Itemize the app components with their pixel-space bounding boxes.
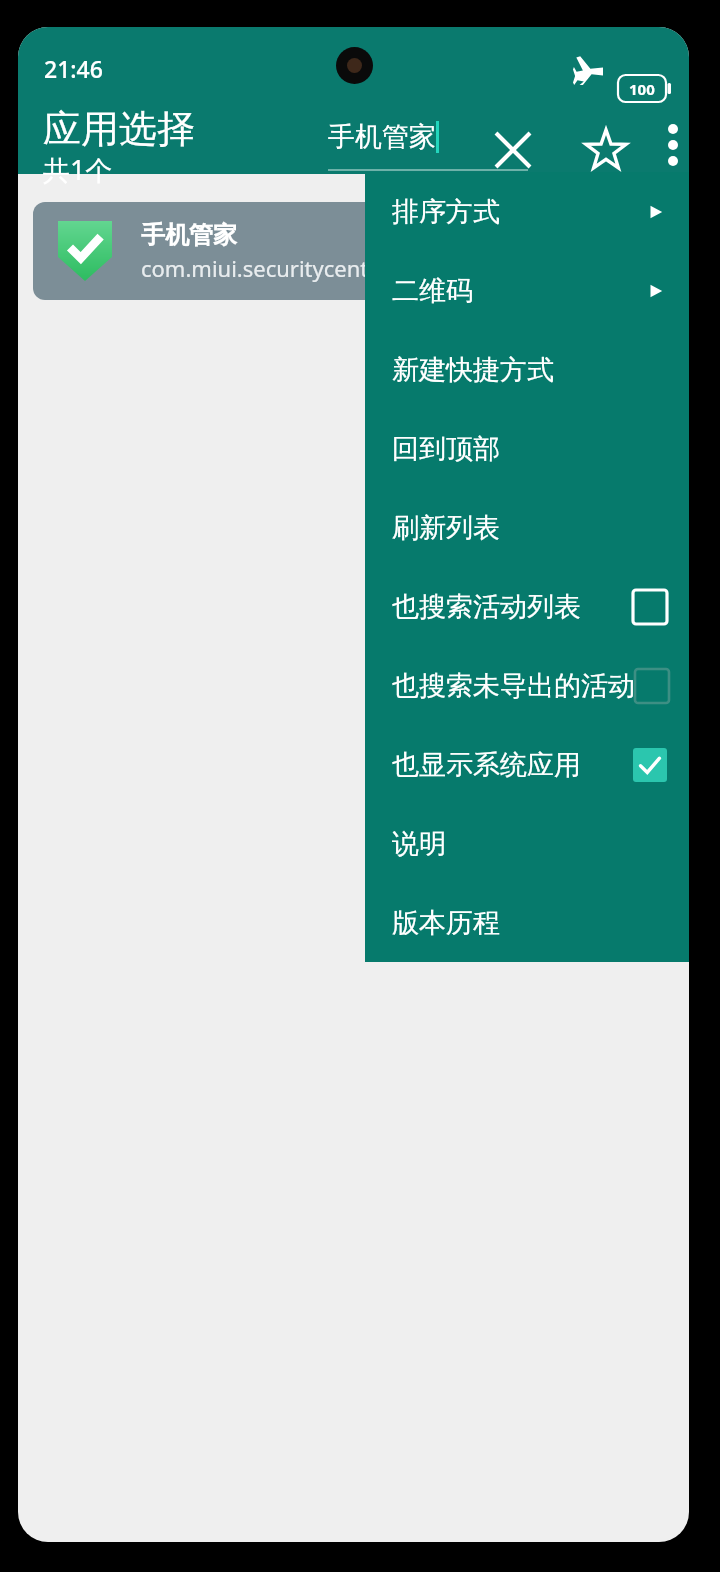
staticText: 手机管家 xyxy=(141,220,237,250)
button[interactable]: Favorite xyxy=(566,110,646,190)
button[interactable]: 回到顶部 xyxy=(365,409,689,488)
staticText: 共1个 xyxy=(43,151,113,188)
staticText: 二维码 xyxy=(392,274,473,308)
button[interactable]: 排序方式 xyxy=(365,172,689,251)
button[interactable]: 新建快捷方式 xyxy=(365,330,689,409)
button[interactable]: 版本历程 xyxy=(365,883,689,962)
staticText: 排序方式 xyxy=(392,195,500,229)
staticText: 说明 xyxy=(392,827,446,861)
button[interactable]: 也搜索活动列表 xyxy=(365,567,689,646)
staticText: 100 xyxy=(629,79,655,99)
staticText: 版本历程 xyxy=(392,906,500,940)
button[interactable]: 手机管家 xyxy=(33,202,673,300)
button[interactable]: 二维码 xyxy=(365,251,689,330)
staticText: 应用选择 xyxy=(43,105,195,153)
staticText: 也显示系统应用 xyxy=(392,748,581,782)
button[interactable]: 手机管家 xyxy=(313,112,528,174)
staticText: 回到顶部 xyxy=(392,432,500,466)
button[interactable]: More options xyxy=(638,110,689,180)
staticText: com.miui.securitycenter xyxy=(141,253,390,283)
staticText: 也搜索活动列表 xyxy=(392,590,581,624)
staticText: 手机管家 xyxy=(328,120,436,154)
staticText: 新建快捷方式 xyxy=(392,353,554,387)
button[interactable]: 说明 xyxy=(365,804,689,883)
button[interactable]: 也搜索未导出的活动 xyxy=(365,646,689,725)
button[interactable]: 刷新列表 xyxy=(365,488,689,567)
staticText: 刷新列表 xyxy=(392,511,500,545)
staticText: 也搜索未导出的活动 xyxy=(392,669,635,703)
staticText: 21:46 xyxy=(44,53,103,84)
button[interactable]: 也显示系统应用 xyxy=(365,725,689,804)
button[interactable]: Clear search xyxy=(473,110,553,190)
